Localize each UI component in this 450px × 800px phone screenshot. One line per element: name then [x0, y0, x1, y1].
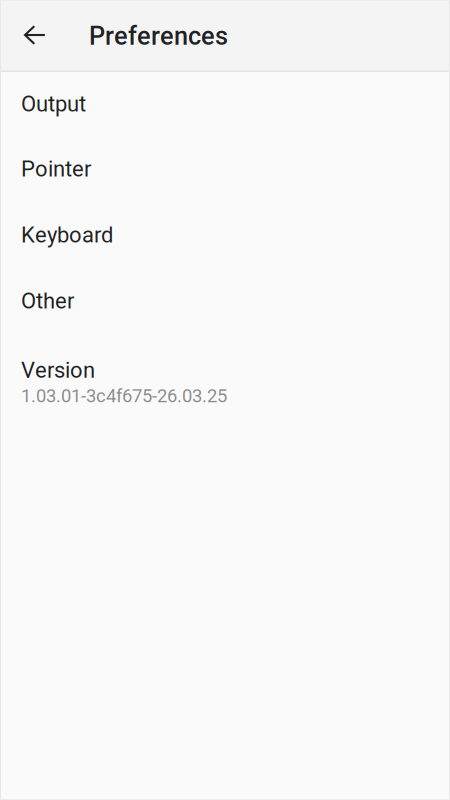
button[interactable]: Other [0, 268, 450, 334]
button[interactable]: Keyboard [0, 202, 450, 268]
staticText: Other [21, 288, 74, 314]
staticText: Version [21, 357, 95, 383]
staticText: Keyboard [21, 222, 113, 248]
staticText: 1.03.01-3c4f675-26.03.25 [21, 385, 227, 407]
button[interactable]: Output [0, 72, 450, 136]
staticText: Pointer [21, 156, 91, 182]
staticText: Preferences [89, 21, 228, 51]
button[interactable]: Version [0, 334, 450, 430]
button[interactable]: Back [12, 13, 58, 59]
staticText: Output [21, 91, 86, 117]
button[interactable]: Pointer [0, 136, 450, 202]
